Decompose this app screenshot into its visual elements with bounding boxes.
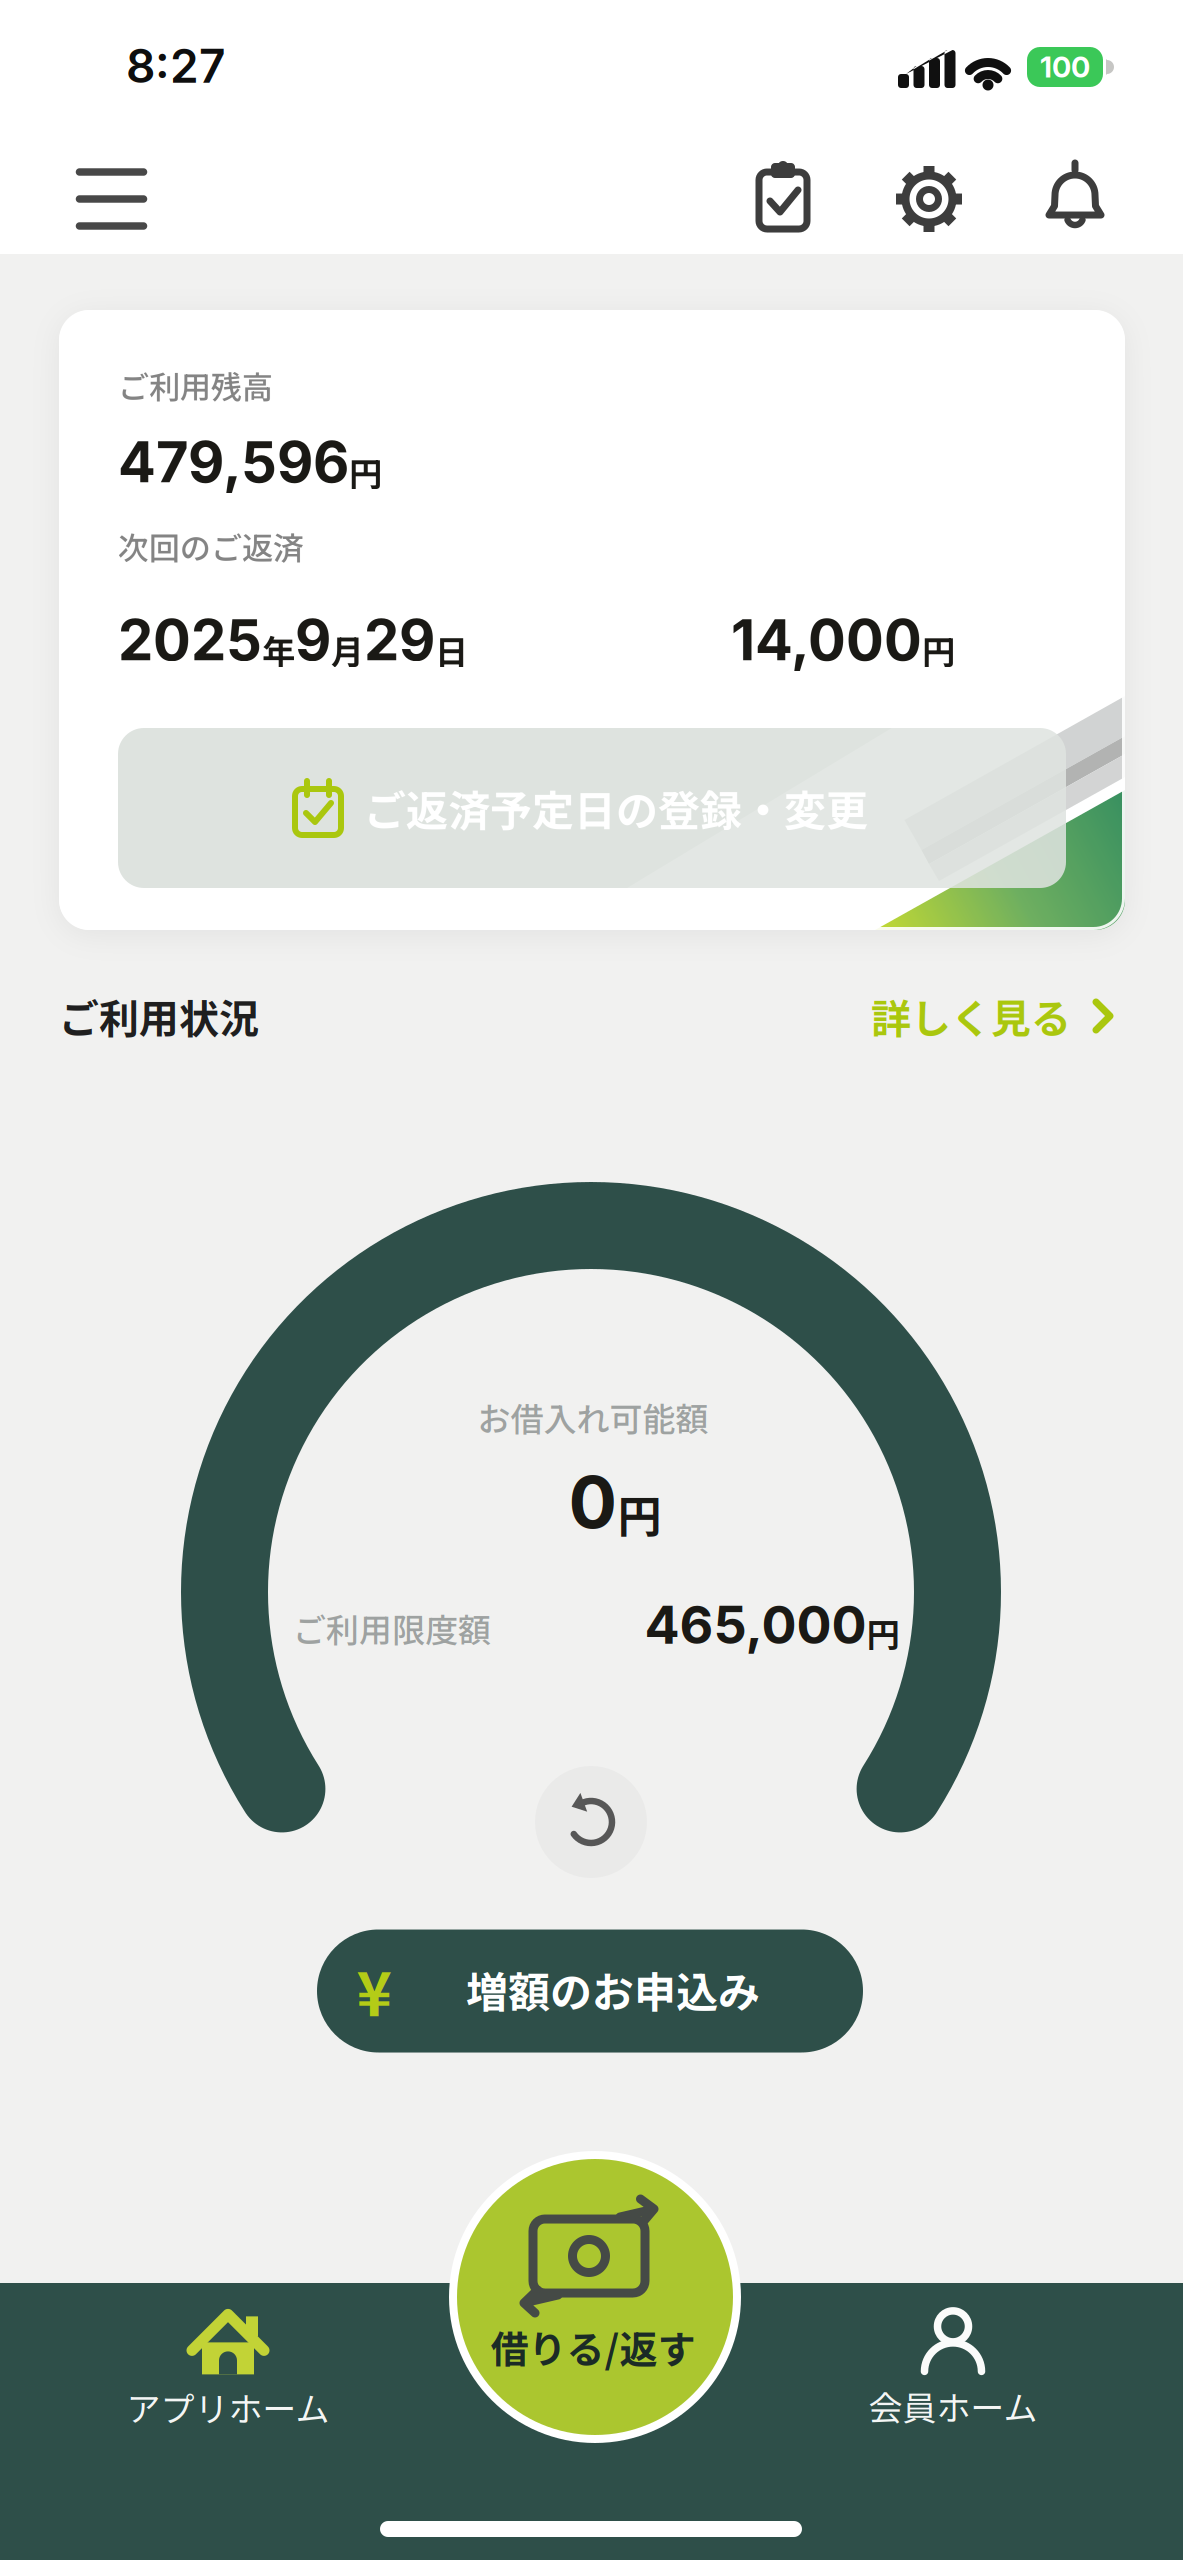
staticText: アプリホーム xyxy=(126,2382,329,2432)
button[interactable]: 借りる/返す xyxy=(449,2151,741,2443)
button[interactable]: 申込状況 xyxy=(756,163,812,233)
staticText: ¥ xyxy=(356,1946,391,2033)
staticText: 14,000円 xyxy=(731,607,955,673)
button[interactable]: 設定 xyxy=(894,164,964,234)
staticText: ご利用残高 xyxy=(118,363,273,407)
staticText: 479,596円 xyxy=(118,429,382,495)
staticText: 8:27 xyxy=(126,38,226,94)
button[interactable]: 会員ホーム xyxy=(868,2309,1037,2431)
staticText: 詳しく見る xyxy=(871,987,1071,1045)
staticText: 借りる/返す xyxy=(490,2319,695,2374)
staticText: ご利用限度額 xyxy=(293,1604,491,1652)
staticText: お借入れ可能額 xyxy=(477,1393,708,1441)
staticText: 465,000円 xyxy=(644,1594,899,1656)
staticText: 増額のお申込み xyxy=(466,1959,760,2020)
button[interactable]: ご返済予定日の登録・変更 xyxy=(118,728,1066,888)
staticText: 次回のご返済 xyxy=(118,524,304,568)
staticText: 100 xyxy=(1040,49,1090,85)
staticText: 会員ホーム xyxy=(868,2381,1037,2431)
button[interactable]: メニュー xyxy=(75,168,147,230)
staticText: ご返済予定日の登録・変更 xyxy=(364,778,868,838)
button[interactable]: 更新 xyxy=(535,1766,647,1878)
button[interactable]: ¥ xyxy=(317,1929,863,2052)
staticText: 2025年9月29日 xyxy=(118,607,468,673)
staticText: ご利用状況 xyxy=(59,987,259,1045)
button[interactable]: アプリホーム xyxy=(126,2312,329,2432)
button[interactable]: お知らせ xyxy=(1044,161,1106,233)
staticText: 0円 xyxy=(568,1459,661,1545)
button[interactable]: 詳しく見る xyxy=(871,987,1115,1045)
